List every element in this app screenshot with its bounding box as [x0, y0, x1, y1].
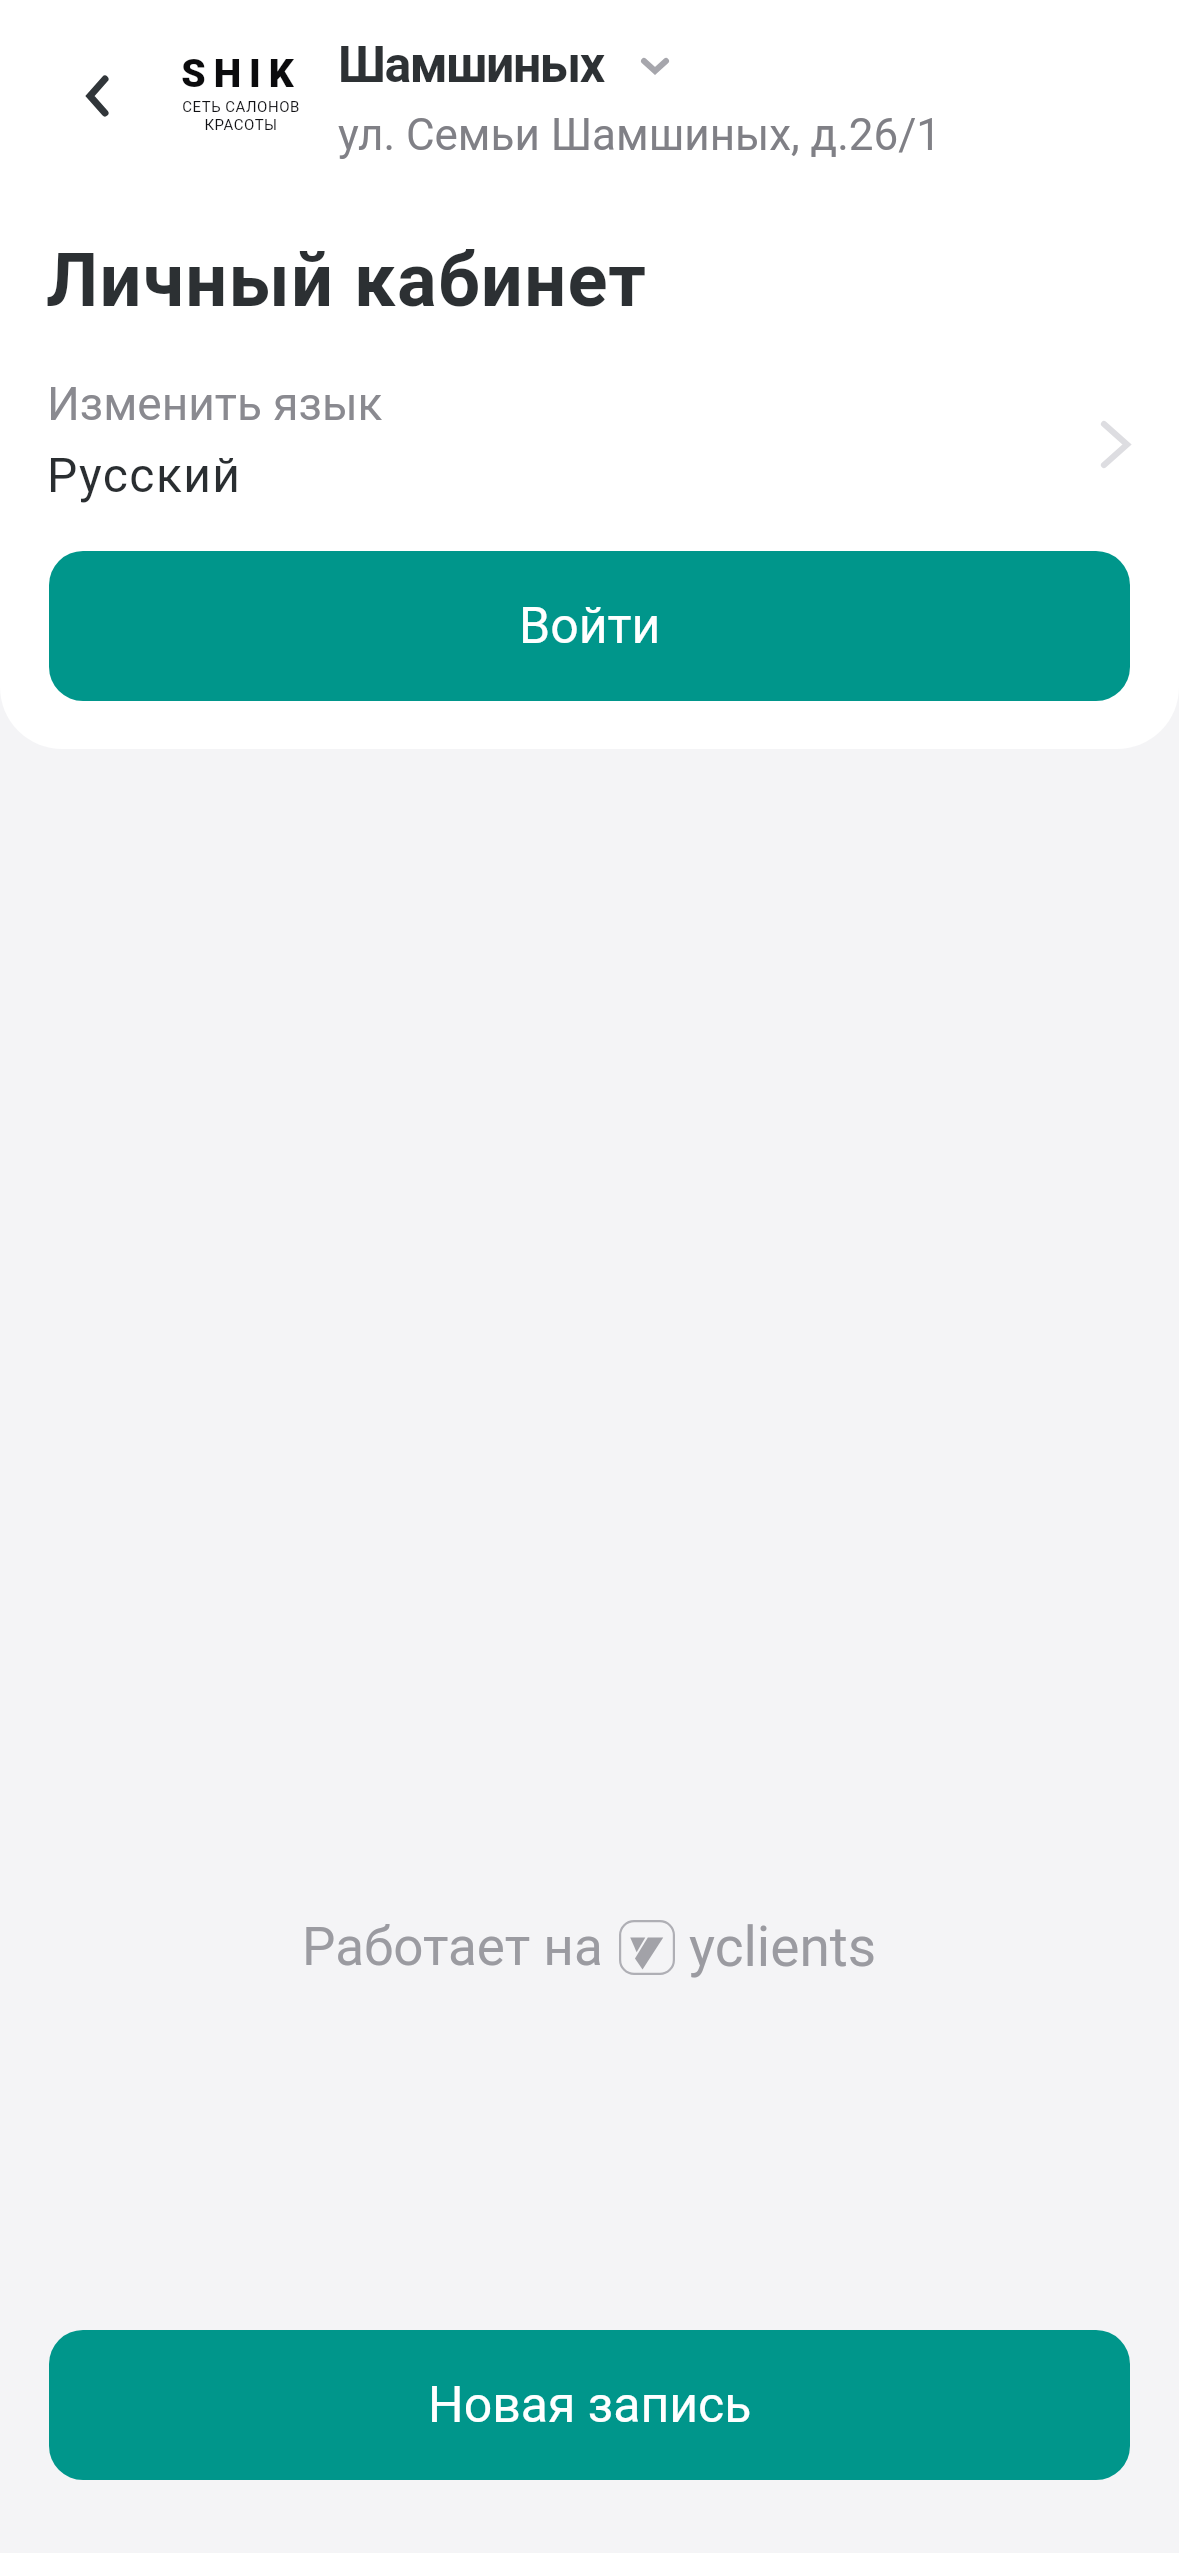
- staticText: Новая запись: [428, 2376, 752, 2435]
- staticText: yclients: [689, 1915, 877, 1979]
- staticText: Изменить язык: [47, 377, 383, 431]
- button[interactable]: Back: [42, 41, 152, 151]
- staticText: Русский: [47, 447, 242, 503]
- staticText: КРАСОТЫ: [204, 116, 278, 134]
- button[interactable]: Шамшиных: [338, 36, 666, 95]
- staticText: Личный кабинет: [46, 237, 648, 324]
- staticText: Работает на: [302, 1916, 603, 1978]
- button[interactable]: Изменить язык: [0, 370, 1179, 510]
- button[interactable]: Войти: [49, 551, 1130, 701]
- staticText: Шамшиных: [338, 36, 604, 95]
- staticText: СЕТЬ САЛОНОВ: [182, 98, 300, 116]
- button[interactable]: Новая запись: [49, 2330, 1130, 2480]
- button[interactable]: Работает на: [0, 1915, 1179, 1979]
- staticText: SHIK: [181, 51, 302, 97]
- staticText: Войти: [519, 597, 661, 656]
- staticText: ул. Семьи Шамшиных, д.26/1: [338, 109, 942, 161]
